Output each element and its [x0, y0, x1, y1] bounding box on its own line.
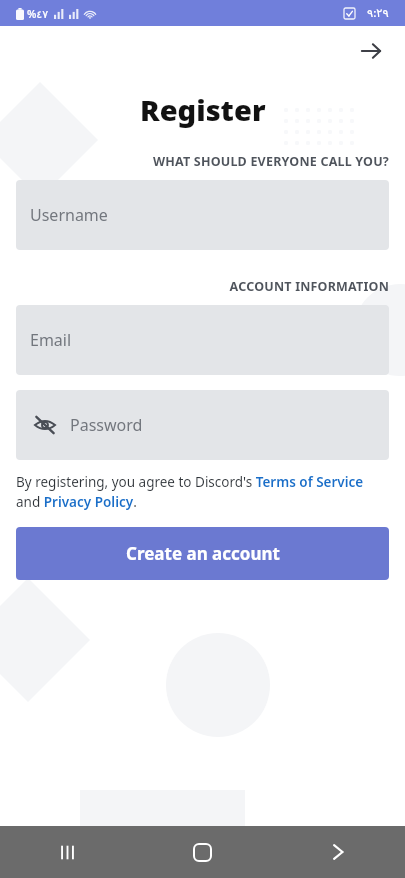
other: Show password [30, 410, 60, 440]
button[interactable]: Username [16, 180, 389, 250]
button[interactable]: Email [16, 305, 389, 375]
staticText: %٤٧ [27, 6, 49, 21]
staticText: Register [140, 90, 266, 129]
staticText: Create an account [126, 542, 280, 565]
button[interactable]: Home [135, 826, 270, 878]
staticText: Password [70, 414, 143, 436]
staticText: Username [30, 204, 108, 226]
staticText: By registering, you agree to Discord's T… [16, 473, 364, 511]
button[interactable]: Create an account [16, 527, 389, 580]
button[interactable]: Back [270, 826, 405, 878]
staticText: ACCOUNT INFORMATION [16, 278, 389, 295]
staticText: ٩:٢٩ [367, 5, 389, 21]
button[interactable]: Next [351, 31, 391, 71]
staticText: WHAT SHOULD EVERYONE CALL YOU? [16, 153, 389, 170]
staticText: Email [30, 329, 72, 351]
button[interactable]: Recent apps [0, 826, 135, 878]
button[interactable]: Show password [16, 390, 389, 460]
